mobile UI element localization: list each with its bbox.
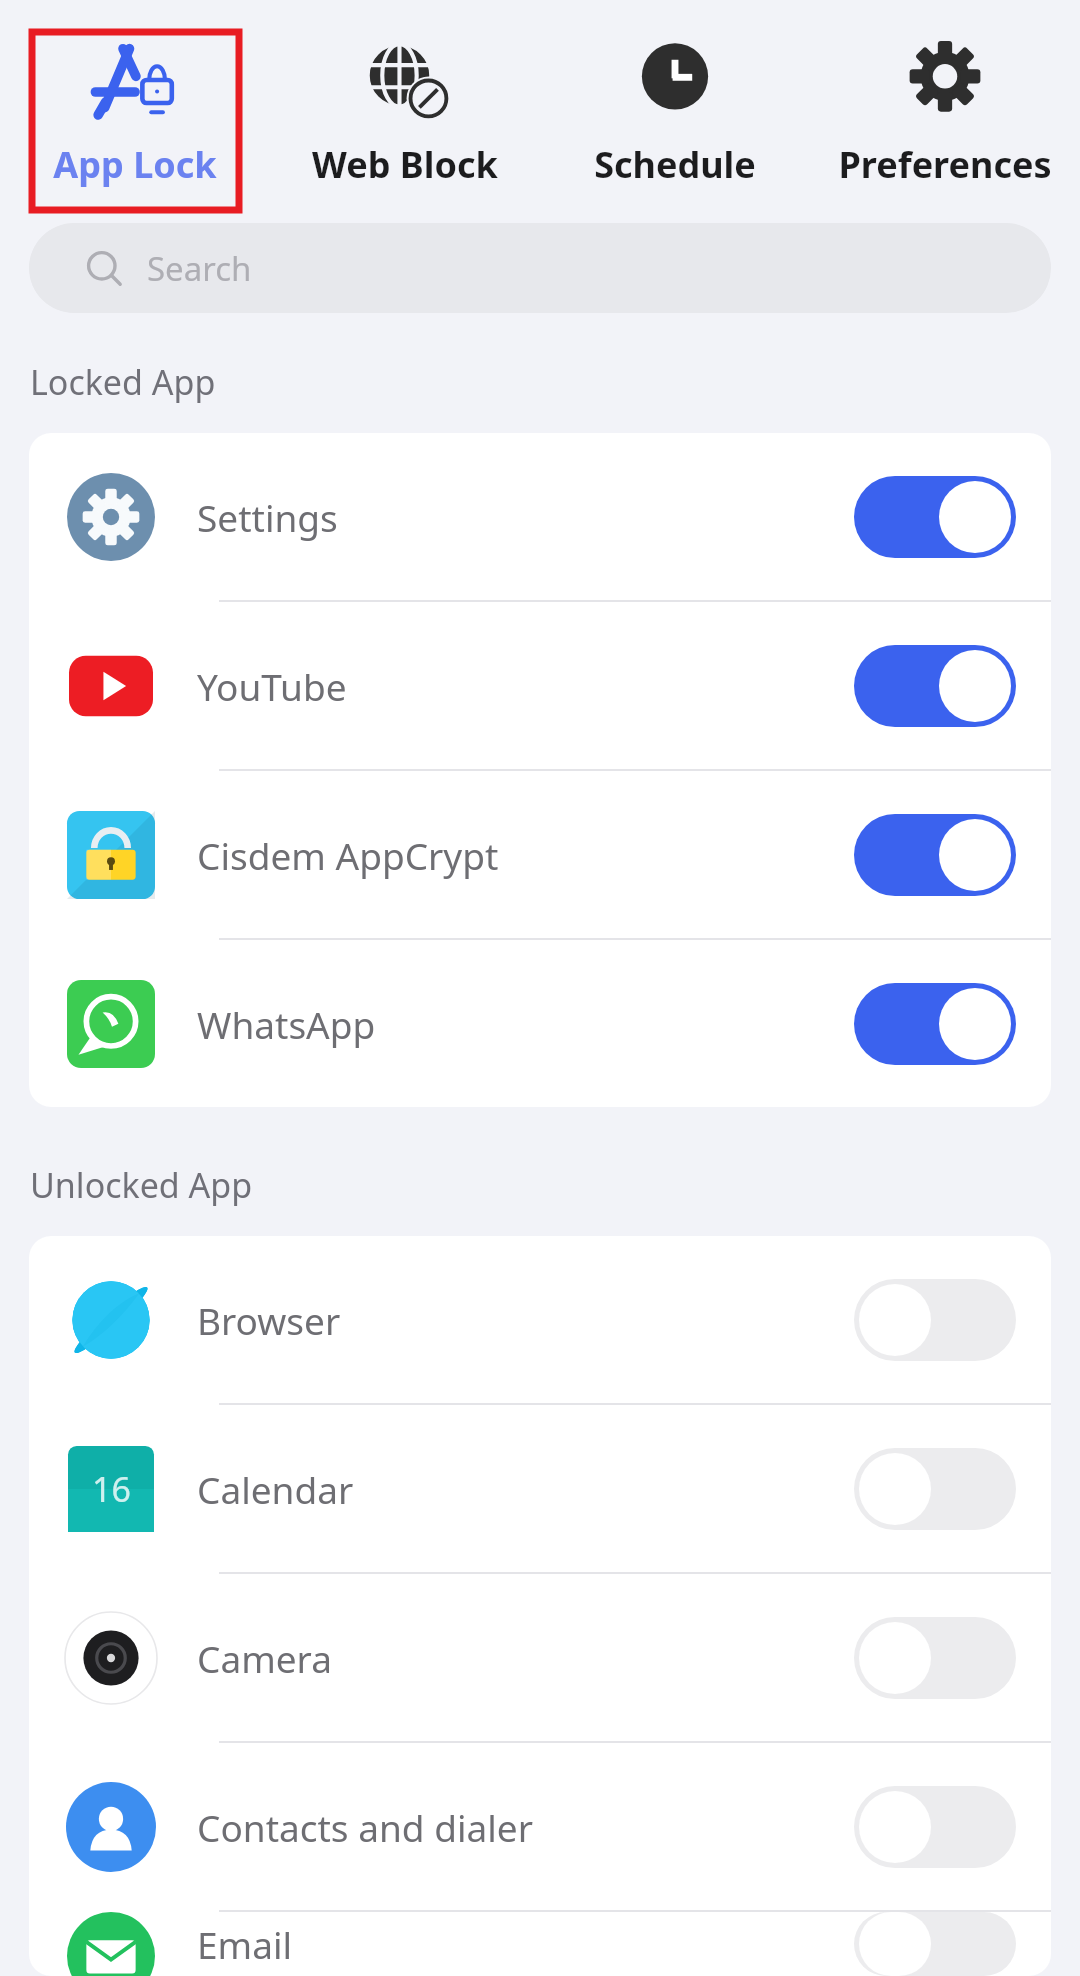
staticText: Schedule [594,140,756,189]
staticText: Web Block [312,140,498,189]
button[interactable]: Camera [29,1574,1051,1743]
staticText: YouTube [197,661,854,711]
other: Preferences [899,34,991,126]
button[interactable]: App Lock [0,0,270,223]
button[interactable]: Locked, on [854,645,1016,727]
button[interactable]: Unlocked, off [854,1617,1016,1699]
button[interactable]: Search [29,223,1051,313]
staticText: Settings [197,492,854,542]
button[interactable]: 16 [29,1405,1051,1574]
button[interactable]: Locked, on [854,476,1016,558]
button[interactable]: Browser [29,1236,1051,1405]
button[interactable]: Email [29,1912,1051,1976]
staticText: Calendar [197,1464,854,1514]
other: App Lock [89,34,181,126]
button[interactable]: Settings [29,433,1051,602]
staticText: Camera [197,1633,854,1683]
button[interactable]: Unlocked, off [854,1912,1016,1976]
button[interactable]: Cisdem AppCrypt [29,771,1051,940]
staticText: Browser [197,1295,854,1345]
button[interactable]: Contacts and dialer [29,1743,1051,1912]
staticText: Cisdem AppCrypt [197,830,854,880]
staticText: App Lock [53,140,217,189]
button[interactable]: Unlocked, off [854,1448,1016,1530]
button[interactable]: WhatsApp [29,940,1051,1107]
button[interactable]: YouTube [29,602,1051,771]
staticText: Search [147,246,252,291]
other: Web Block [359,34,451,126]
button[interactable]: Preferences [810,0,1080,223]
staticText: Preferences [838,140,1052,189]
staticText: 16 [92,1466,131,1512]
other: Schedule [629,34,721,126]
staticText: Unlocked App [30,1162,253,1208]
staticText: Contacts and dialer [197,1802,854,1852]
button[interactable]: Web Block [270,0,540,223]
staticText: Locked App [30,359,216,405]
button[interactable]: Locked, on [854,983,1016,1065]
button[interactable]: Schedule [540,0,810,223]
staticText: Email [197,1919,854,1969]
staticText: WhatsApp [197,999,854,1049]
button[interactable]: Unlocked, off [854,1786,1016,1868]
button[interactable]: Locked, on [854,814,1016,896]
button[interactable]: Unlocked, off [854,1279,1016,1361]
